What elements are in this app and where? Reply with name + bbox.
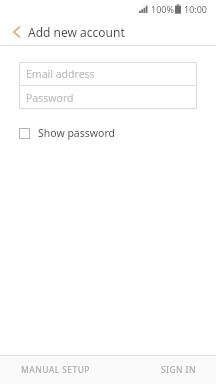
button[interactable]: MANUAL SETUP xyxy=(0,356,108,384)
button[interactable]: Show password xyxy=(19,123,197,143)
staticText: Show password xyxy=(38,126,115,140)
button[interactable]: Email address xyxy=(19,62,197,85)
button[interactable]: Navigate up xyxy=(6,22,26,42)
staticText: 10:00 xyxy=(184,3,208,15)
staticText: 100% xyxy=(151,3,174,15)
button[interactable]: SIGN IN xyxy=(108,356,216,384)
button[interactable]: Password xyxy=(19,86,197,109)
staticText: Add new account xyxy=(28,24,125,40)
staticText: SIGN IN xyxy=(160,364,196,376)
staticText: Email address xyxy=(26,67,95,81)
staticText: MANUAL SETUP xyxy=(21,364,90,376)
staticText: Password xyxy=(26,91,74,105)
